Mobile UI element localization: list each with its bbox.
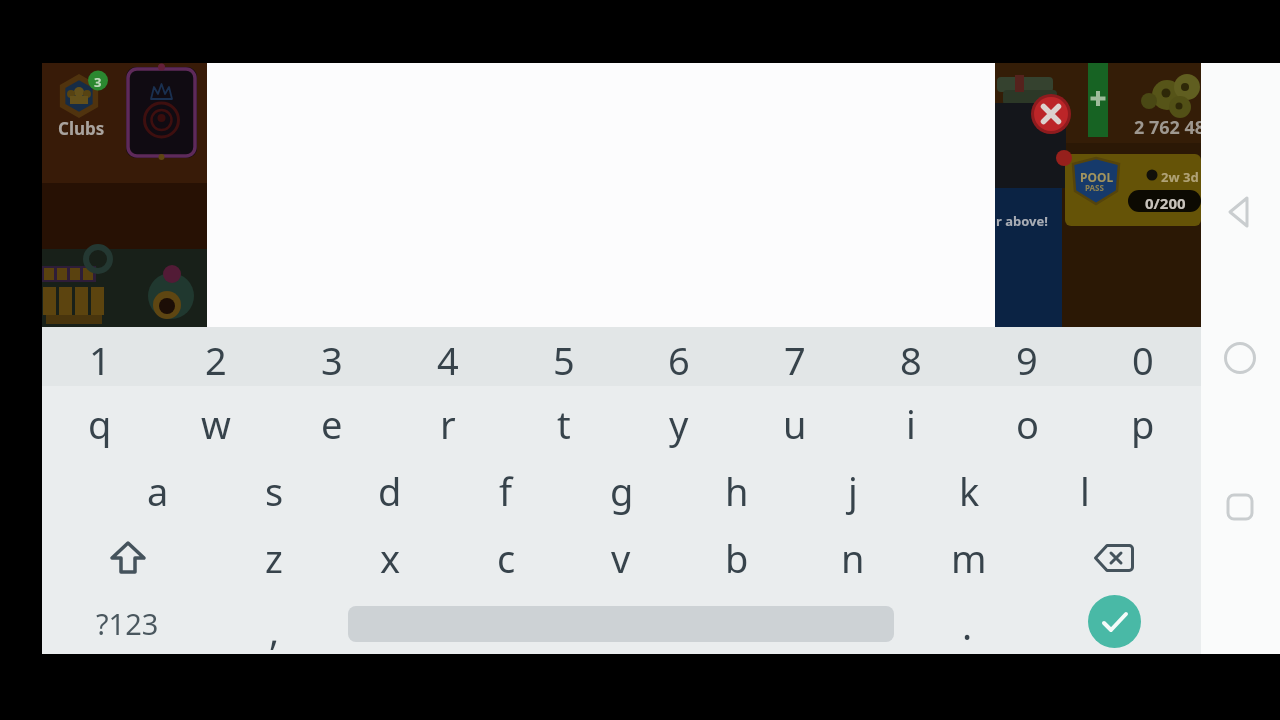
- staticText: 7: [784, 334, 806, 386]
- button[interactable]: k: [912, 458, 1026, 524]
- staticText: e: [321, 398, 343, 450]
- button[interactable]: 0: [1086, 331, 1200, 389]
- button[interactable]: i: [854, 391, 968, 457]
- staticText: 8: [900, 334, 922, 386]
- staticText: 2w 3d: [1161, 168, 1199, 186]
- staticText: c: [497, 532, 516, 584]
- staticText: u: [783, 398, 807, 450]
- staticText: b: [725, 532, 749, 584]
- button[interactable]: t: [507, 391, 621, 457]
- staticText: r: [440, 398, 456, 450]
- button[interactable]: .: [922, 598, 1012, 652]
- button[interactable]: h: [680, 458, 794, 524]
- staticText: 6: [668, 334, 690, 386]
- staticText: ,: [269, 604, 280, 654]
- staticText: v: [611, 532, 631, 584]
- staticText: s: [265, 465, 284, 517]
- button[interactable]: 7: [738, 331, 852, 389]
- staticText: i: [906, 398, 916, 450]
- button[interactable]: b: [680, 525, 794, 591]
- staticText: 3: [94, 73, 102, 91]
- staticText: o: [1016, 398, 1039, 450]
- button[interactable]: [88, 528, 168, 588]
- button[interactable]: 6: [622, 331, 736, 389]
- button[interactable]: [1074, 528, 1154, 588]
- button[interactable]: p: [1086, 391, 1200, 457]
- staticText: n: [841, 532, 865, 584]
- button[interactable]: z: [217, 525, 331, 591]
- button[interactable]: 1: [43, 331, 157, 389]
- button[interactable]: [1220, 192, 1260, 232]
- staticText: p: [1131, 398, 1155, 450]
- staticText: 4: [437, 334, 459, 386]
- staticText: ?123: [96, 604, 159, 643]
- staticText: 9: [1016, 334, 1038, 386]
- staticText: POOL: [1080, 169, 1114, 185]
- button[interactable]: j: [796, 458, 910, 524]
- button[interactable]: r: [391, 391, 505, 457]
- button[interactable]: ?123: [62, 592, 192, 654]
- staticText: 0: [1132, 334, 1154, 386]
- button[interactable]: 4: [391, 331, 505, 389]
- staticText: y: [669, 398, 689, 450]
- staticText: 0/200: [1145, 193, 1186, 213]
- staticText: 2 762 482: [1134, 115, 1201, 140]
- staticText: PASS: [1085, 182, 1104, 193]
- button[interactable]: c: [449, 525, 563, 591]
- staticText: m: [951, 532, 987, 584]
- button[interactable]: n: [796, 525, 910, 591]
- button[interactable]: 5: [507, 331, 621, 389]
- staticText: 3: [321, 334, 343, 386]
- button[interactable]: g: [565, 458, 679, 524]
- button[interactable]: a: [101, 458, 215, 524]
- button[interactable]: y: [622, 391, 736, 457]
- staticText: r above!: [996, 212, 1048, 230]
- staticText: 2: [205, 334, 227, 386]
- button[interactable]: ,: [229, 604, 319, 654]
- button[interactable]: [1088, 595, 1141, 648]
- button[interactable]: o: [970, 391, 1084, 457]
- staticText: x: [380, 532, 401, 584]
- staticText: g: [610, 465, 634, 517]
- button[interactable]: w: [159, 391, 273, 457]
- staticText: t: [557, 398, 571, 450]
- staticText: d: [378, 465, 402, 517]
- button[interactable]: s: [217, 458, 331, 524]
- button[interactable]: v: [564, 525, 678, 591]
- button[interactable]: 8: [854, 331, 968, 389]
- staticText: 5: [553, 334, 575, 386]
- button[interactable]: [1220, 338, 1260, 378]
- staticText: q: [88, 398, 112, 450]
- staticText: f: [499, 465, 513, 517]
- staticText: a: [147, 465, 169, 517]
- button[interactable]: x: [333, 525, 447, 591]
- button[interactable]: f: [449, 458, 563, 524]
- button[interactable]: [1220, 487, 1260, 527]
- button[interactable]: e: [275, 391, 389, 457]
- staticText: j: [848, 465, 858, 517]
- staticText: w: [201, 398, 231, 450]
- staticText: 1: [89, 334, 111, 386]
- button[interactable]: u: [738, 391, 852, 457]
- staticText: h: [725, 465, 749, 517]
- staticText: l: [1080, 465, 1090, 517]
- staticText: k: [959, 465, 980, 517]
- button[interactable]: q: [43, 391, 157, 457]
- staticText: Clubs: [58, 117, 105, 140]
- staticText: z: [265, 532, 283, 584]
- button[interactable]: 2: [159, 331, 273, 389]
- button[interactable]: d: [333, 458, 447, 524]
- button[interactable]: l: [1028, 458, 1142, 524]
- staticText: .: [962, 599, 973, 651]
- button[interactable]: m: [912, 525, 1026, 591]
- button[interactable]: 9: [970, 331, 1084, 389]
- button[interactable]: 3: [275, 331, 389, 389]
